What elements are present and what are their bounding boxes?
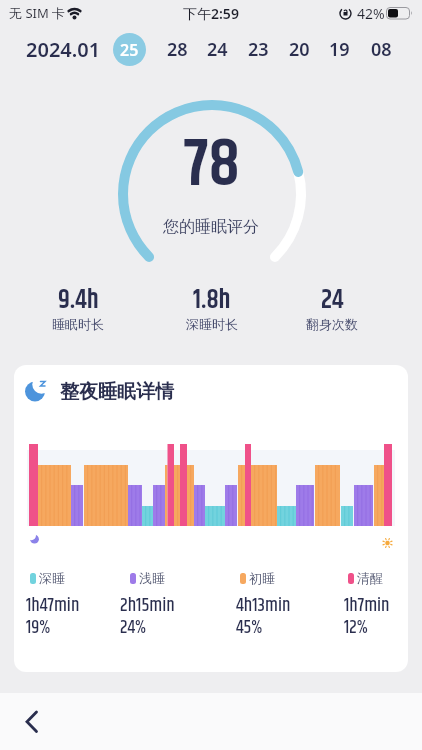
staticText: 2024.01 (26, 36, 101, 63)
staticText: 24 (207, 37, 228, 62)
staticText: 4h13min (236, 592, 291, 612)
staticText: 08 (371, 37, 392, 62)
button[interactable]: 24 (117, 31, 317, 67)
button[interactable]: 25 (113, 33, 146, 66)
staticText: 9.4h (58, 281, 99, 321)
button[interactable]: 20 (199, 31, 399, 67)
staticText: 深睡时长 (186, 316, 238, 332)
staticText: 1.8h (193, 281, 231, 321)
staticText: 24% (120, 614, 147, 634)
button[interactable]: 28 (77, 31, 277, 67)
staticText: 无 SIM 卡 (9, 4, 66, 22)
staticText: 下午2:59 (183, 4, 239, 23)
button[interactable] (14, 705, 48, 739)
staticText: 19% (26, 614, 51, 634)
staticText: 您的睡眠评分 (163, 217, 259, 237)
staticText: 20 (289, 37, 310, 62)
staticText: 12% (344, 614, 368, 634)
staticText: 23 (248, 37, 269, 62)
staticText: 睡眠时长 (52, 316, 104, 332)
staticText: 浅睡 (139, 570, 165, 586)
staticText: 28 (167, 37, 188, 62)
staticText: 翻身次数 (306, 316, 358, 332)
staticText: 19 (329, 37, 350, 62)
staticText: 78 (184, 115, 240, 217)
staticText: 1h47min (26, 592, 80, 612)
staticText: 清醒 (357, 570, 383, 586)
staticText: 整夜睡眠详情 (60, 380, 174, 404)
staticText: 1h7min (344, 592, 390, 612)
button[interactable]: 23 (158, 31, 358, 67)
staticText: 45% (236, 614, 263, 634)
staticText: 初睡 (249, 570, 275, 586)
button[interactable]: 08 (281, 31, 422, 67)
button[interactable]: 19 (239, 31, 422, 67)
staticText: 25 (120, 39, 139, 61)
staticText: 深睡 (39, 570, 65, 586)
button[interactable]: 2024.01 (0, 29, 163, 69)
staticText: 24 (321, 281, 344, 321)
staticText: 42% (357, 4, 385, 23)
staticText: 2h15min (120, 592, 175, 612)
